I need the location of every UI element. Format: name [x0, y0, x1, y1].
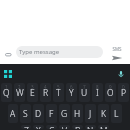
- staticText: I: [96, 87, 99, 99]
- staticText: Z: [24, 125, 29, 129]
- staticText: 4: [44, 84, 47, 90]
- button[interactable]: G: [59, 104, 70, 123]
- staticText: U: [81, 87, 88, 99]
- staticText: V: [62, 125, 67, 129]
- staticText: Type message: [19, 48, 60, 56]
- button[interactable]: 1: [1, 83, 12, 102]
- staticText: O: [107, 87, 114, 99]
- staticText: S: [23, 108, 28, 120]
- button[interactable]: K: [98, 104, 109, 123]
- button[interactable]: Open apps: [1, 66, 15, 80]
- button[interactable]: B: [72, 125, 83, 129]
- button[interactable]: A: [8, 104, 18, 123]
- staticText: D: [35, 108, 42, 120]
- staticText: G: [61, 108, 68, 120]
- staticText: 3: [31, 84, 34, 90]
- staticText: K: [101, 108, 106, 120]
- staticText: 0: [122, 84, 125, 90]
- button[interactable]: 3: [27, 83, 38, 102]
- staticText: W: [16, 87, 24, 99]
- staticText: H: [74, 108, 81, 120]
- button[interactable]: Type message: [16, 46, 103, 58]
- staticText: 7: [83, 84, 86, 90]
- button[interactable]: 8: [92, 83, 103, 102]
- staticText: 8: [96, 84, 99, 90]
- button[interactable]: 0: [118, 83, 129, 102]
- button[interactable]: J: [85, 104, 96, 123]
- button[interactable]: Attach: [1, 46, 15, 60]
- button[interactable]: Voice input: [114, 66, 128, 80]
- button[interactable]: L: [111, 104, 122, 123]
- button[interactable]: V: [59, 125, 70, 129]
- button[interactable]: N: [85, 125, 96, 129]
- button[interactable]: M: [98, 125, 109, 129]
- staticText: 1: [5, 84, 8, 90]
- button[interactable]: H: [72, 104, 83, 123]
- button[interactable]: 7: [79, 83, 90, 102]
- button[interactable]: Z: [21, 125, 31, 129]
- button[interactable]: 6: [66, 83, 77, 102]
- button[interactable]: 4: [40, 83, 51, 102]
- staticText: M: [100, 125, 108, 129]
- button[interactable]: S: [20, 104, 31, 123]
- staticText: L: [114, 108, 119, 120]
- staticText: P: [121, 87, 127, 99]
- staticText: 5: [57, 84, 60, 90]
- staticText: 2: [18, 84, 21, 90]
- button[interactable]: C: [46, 125, 57, 129]
- button[interactable]: Send SMS: [108, 43, 126, 63]
- button[interactable]: F: [46, 104, 57, 123]
- button[interactable]: 2: [14, 83, 25, 102]
- staticText: 6: [70, 84, 73, 90]
- staticText: SMS: [112, 46, 122, 52]
- button[interactable]: D: [33, 104, 44, 123]
- staticText: 9: [109, 84, 112, 90]
- button[interactable]: 5: [53, 83, 64, 102]
- staticText: T: [56, 87, 61, 99]
- staticText: B: [75, 125, 81, 129]
- staticText: J: [89, 108, 92, 120]
- staticText: N: [87, 125, 94, 129]
- staticText: A: [10, 108, 16, 120]
- staticText: Q: [3, 87, 10, 99]
- staticText: X: [36, 125, 41, 129]
- button[interactable]: 9: [105, 83, 116, 102]
- staticText: C: [49, 125, 55, 129]
- staticText: E: [30, 87, 35, 99]
- staticText: Y: [69, 87, 74, 99]
- button[interactable]: X: [33, 125, 44, 129]
- staticText: F: [49, 108, 54, 120]
- staticText: R: [43, 87, 49, 99]
